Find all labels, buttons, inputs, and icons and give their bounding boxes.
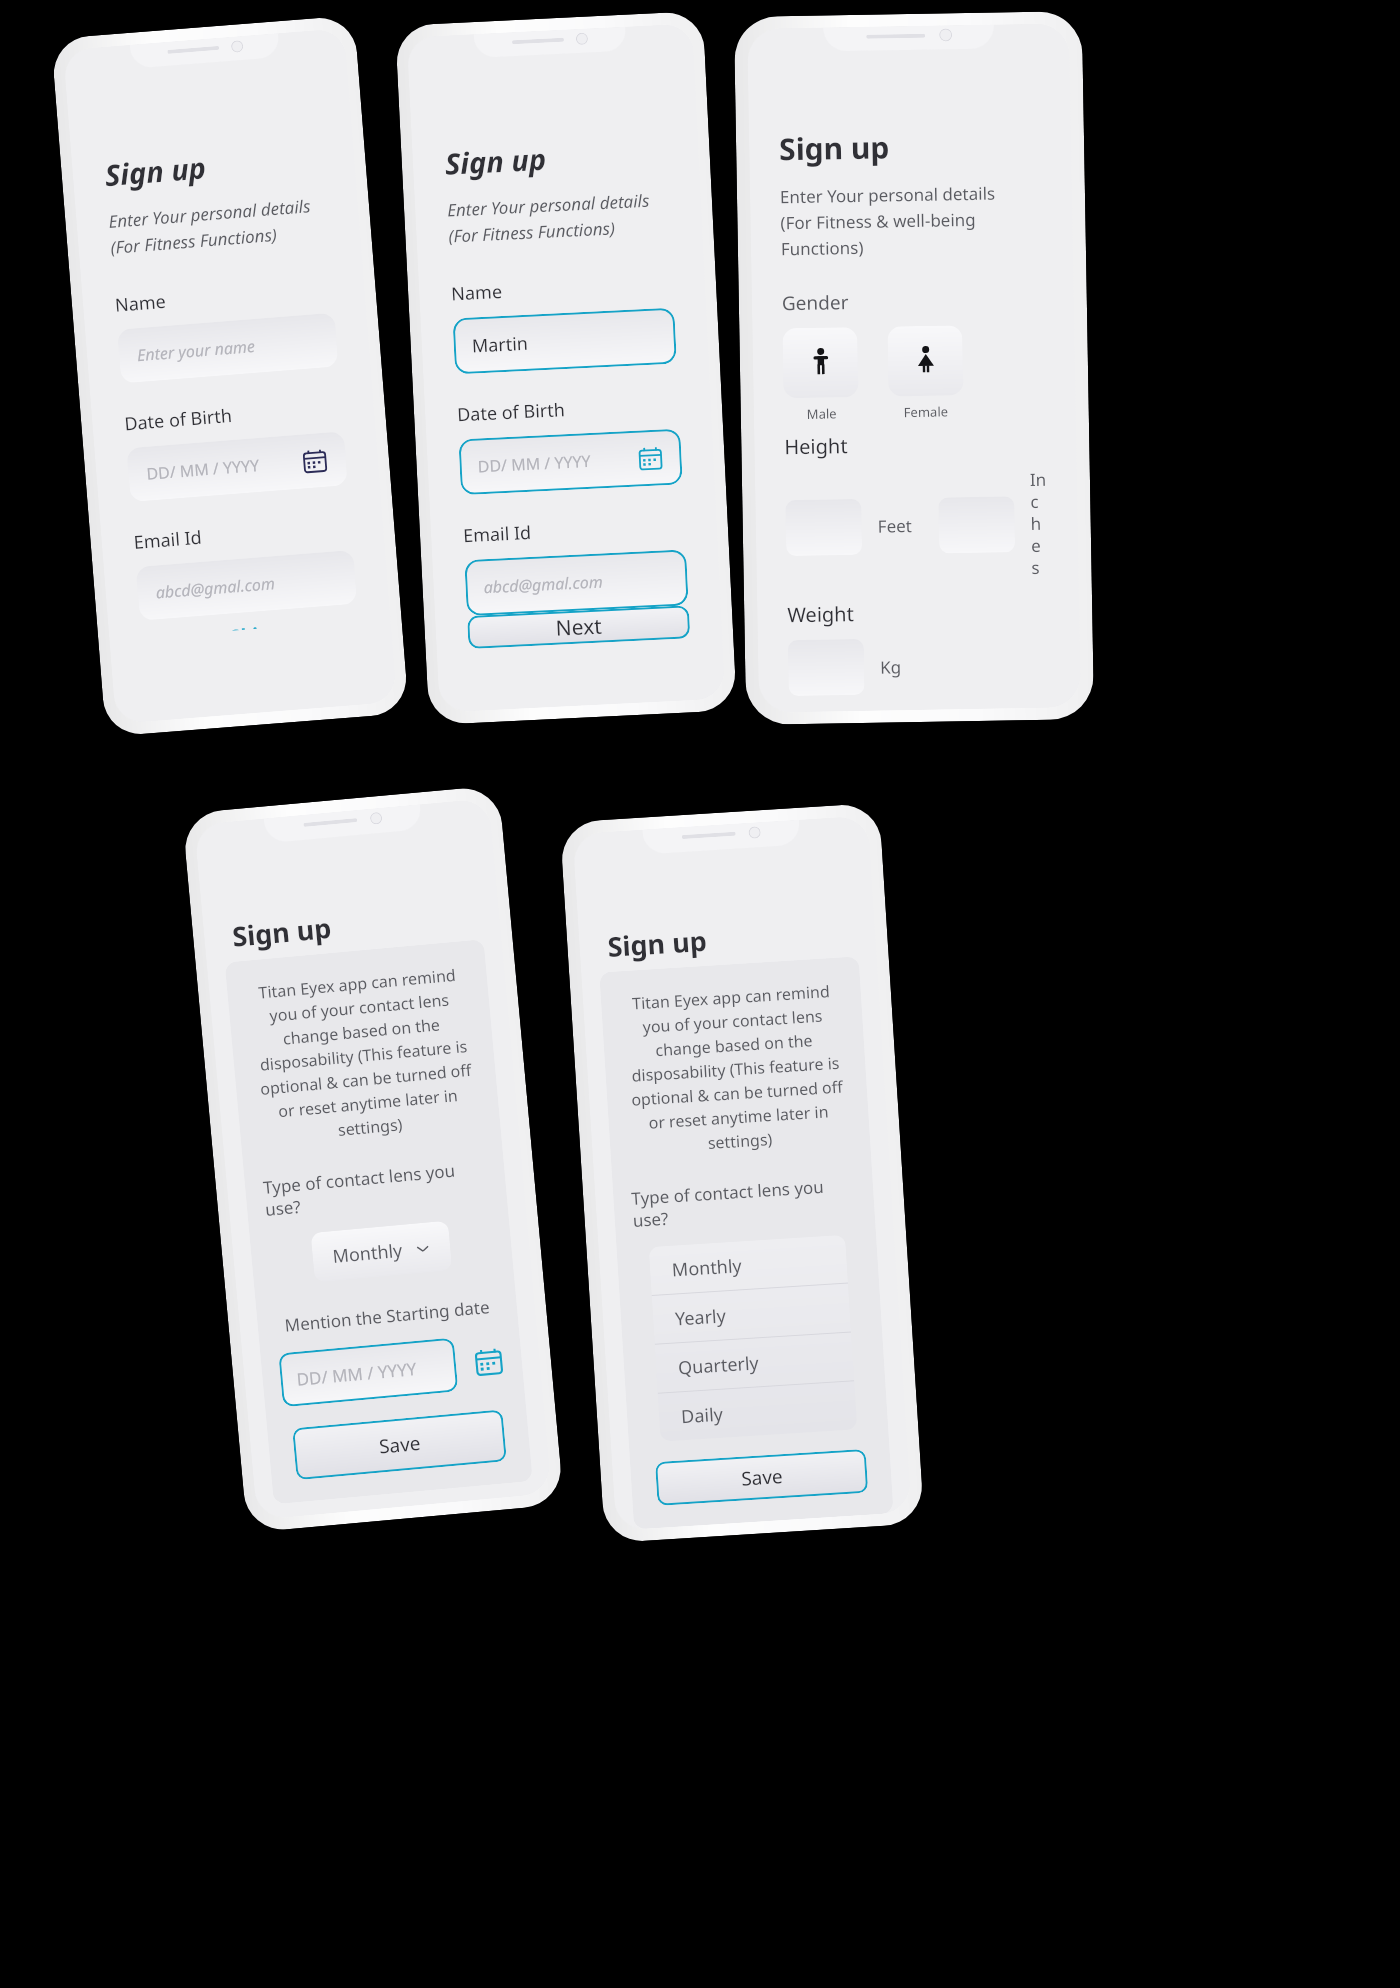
button[interactable]: Martin [452,308,677,374]
button[interactable]: Next [467,605,690,649]
staticText: Female [904,402,949,421]
staticText: Type of contact lens you use? [262,1156,489,1221]
staticText: Date of Birth [456,397,566,427]
staticText: Skip [229,621,270,631]
button[interactable]: Next [636,1390,880,1467]
button[interactable]: Next [274,1372,518,1456]
button[interactable]: Enter your name [117,313,339,383]
staticText: Next [555,611,603,643]
staticText: Monthly [331,1238,403,1269]
staticText: Sign up [606,922,708,965]
staticText: Contact lens user [266,1299,415,1337]
staticText: Email Id [462,520,533,548]
staticText: Quarterly [677,1350,760,1380]
staticText: Save [740,1463,784,1492]
staticText: Monthly [671,1253,743,1282]
staticText: Name [114,289,167,318]
staticText: abcd@gmal.com [155,572,276,603]
staticText: abcd@gmal.com [483,570,604,598]
button[interactable]: Male [782,327,859,423]
staticText: Titan Eyex app can remind you of your co… [244,963,483,1148]
staticText: Inches [1030,468,1049,579]
staticText: Sign up [779,126,890,169]
staticText: Height [784,432,849,460]
staticText: Date of Birth [123,403,233,436]
staticText: Enter Your personal details (For Fitness… [780,181,1043,260]
other: Pick date [637,444,664,472]
staticText: Titan Eyex app can remind you of your co… [618,979,852,1159]
button[interactable] [785,499,862,556]
button[interactable]: Save [655,1449,868,1506]
staticText: Enter your name [136,335,256,366]
button[interactable]: DD/ MM / YYYY [126,431,348,502]
staticText: Enter Your personal details (For Fitness… [108,194,314,259]
button[interactable]: Quarterly [655,1332,854,1393]
button[interactable]: Monthly [310,1220,452,1283]
staticText: Email Id [133,525,203,555]
staticText: Contact lens user [631,1314,779,1348]
button[interactable]: Pick date [472,1345,505,1378]
staticText: Next [372,1398,421,1431]
other: Pick date [301,447,329,475]
staticText: DD/ MM / YYYY [296,1357,418,1391]
button[interactable]: No [439,1283,508,1328]
button[interactable] [938,496,1015,554]
staticText: Enter Your personal details (For Fitness… [447,189,652,248]
button[interactable]: abcd@gmal.com [136,550,357,621]
button[interactable]: Save [292,1409,507,1480]
button[interactable]: Female [887,325,964,421]
button[interactable]: Skip [219,610,281,641]
staticText: No [452,1294,476,1318]
button[interactable]: DD/ MM / YYYY [458,428,683,495]
staticText: Sign up [231,909,333,955]
staticText: Feet [878,514,913,538]
staticText: Gender [782,289,849,316]
staticText: DD/ MM / YYYY [477,450,591,477]
button[interactable]: Yearly [651,1284,851,1344]
staticText: Yearly [674,1303,727,1331]
staticText: Name [451,279,503,306]
staticText: Save [378,1430,422,1460]
staticText: DD/ MM / YYYY [146,454,260,485]
staticText: Daily [680,1402,724,1429]
staticText: Type of contact lens you use? [631,1173,857,1232]
button[interactable]: DD/ MM / YYYY [278,1337,458,1407]
staticText: Weight [787,600,855,628]
staticText: Martin [471,331,529,359]
staticText: Sign up [103,147,208,194]
staticText: Mention the Starting date [284,1295,491,1337]
button[interactable]: abcd@gmal.com [464,549,689,616]
button[interactable]: Daily [658,1381,857,1442]
staticText: Male [807,404,837,423]
staticText: Sign up [444,139,548,183]
button[interactable]: Monthly [648,1235,848,1295]
button[interactable] [788,639,865,696]
staticText: Kg [880,655,901,679]
